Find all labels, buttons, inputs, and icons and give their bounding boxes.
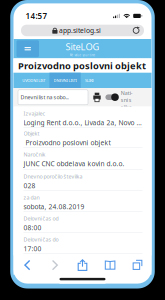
button[interactable]: Print <box>92 92 101 102</box>
staticText: za dan <box>23 194 39 201</box>
staticText: UVODNI LIST <box>22 78 45 83</box>
staticText: 14:57 <box>25 11 47 21</box>
staticText: Dnevno poročilo številka <box>23 173 82 180</box>
button[interactable]: SLIKE <box>81 73 98 88</box>
button[interactable]: UVODNI LIST <box>18 73 49 88</box>
button[interactable]: app.sitelog.si <box>13 25 151 36</box>
button[interactable]: DNEVNI LISTI <box>49 73 81 88</box>
button[interactable]: Menu <box>16 40 39 57</box>
button[interactable]: Share <box>69 259 96 271</box>
staticText: app.sitelog.si <box>59 26 101 35</box>
staticText: Loging Rent d.o.o., Livada 2a, Novo mest… <box>23 118 142 127</box>
staticText: 08:00 <box>23 223 41 232</box>
staticText: Objekt <box>23 130 39 137</box>
button[interactable]: Forward <box>41 260 69 271</box>
staticText: SLIKE <box>85 78 94 83</box>
button[interactable]: Dnevni list na sobo... <box>18 90 88 105</box>
staticText: sobota, 24.08.2019 <box>23 202 84 211</box>
staticText: 028 <box>23 181 35 190</box>
staticText: Proizvodno poslovni objekt <box>23 138 110 147</box>
button[interactable]: Print with photos <box>105 93 118 101</box>
button[interactable]: Back <box>13 260 41 271</box>
staticText: SiteLOG <box>65 40 99 53</box>
staticText: Dnevni list na sobo... <box>21 94 69 101</box>
staticText: Delovni čas do <box>23 236 58 243</box>
staticText: Proizvodno poslovni objekt <box>18 59 146 72</box>
staticText: Naročnik <box>23 151 45 158</box>
staticText: JUNC CNC obdelava kovin d.o.o. <box>23 159 124 168</box>
staticText: DNEVNI LISTI <box>54 78 77 83</box>
staticText: Delovni čas od <box>23 215 58 222</box>
staticText: Izvajalec <box>23 110 45 117</box>
staticText: Natisni s slikami <box>121 89 134 118</box>
staticText: We value your time <box>69 53 95 57</box>
button[interactable]: Tabs <box>124 260 151 271</box>
button[interactable]: Bookmarks <box>96 260 124 271</box>
staticText: 17:00 <box>23 244 41 253</box>
